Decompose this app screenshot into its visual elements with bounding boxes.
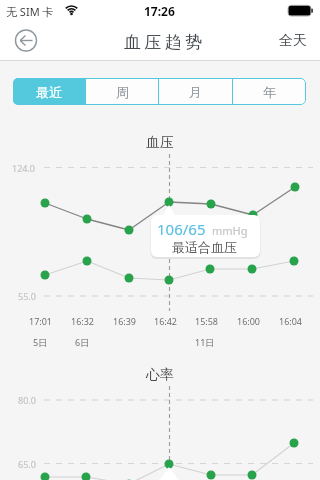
staticText: 血压 [146,134,174,152]
staticText: 16:42 [154,315,178,327]
staticText: 124.0 [12,162,36,174]
staticText: 周 [116,84,129,100]
staticText: 17:01 [29,315,53,327]
staticText: 最近 [36,84,62,100]
staticText: 16:04 [279,315,303,327]
button[interactable] [6,25,46,57]
staticText: 106/65 [157,219,206,239]
staticText: 全天 [279,32,307,50]
button[interactable]: 年 [233,78,306,105]
button[interactable]: 全天 [279,26,307,56]
staticText: 11日 [195,336,215,348]
staticText: 6日 [75,336,90,348]
staticText: 65.0 [18,458,36,470]
button[interactable]: 周 [86,78,158,105]
staticText: 血压趋势 [122,32,204,53]
staticText: mmHg [212,223,248,238]
staticText: 年 [263,84,276,100]
staticText: 月 [189,84,202,100]
staticText: 16:00 [237,315,261,327]
staticText: 无 SIM 卡 [6,4,54,19]
staticText: 55.0 [18,290,36,302]
button[interactable]: 月 [159,78,232,105]
staticText: 最适合血压 [172,239,237,255]
staticText: 心率 [146,366,174,384]
staticText: 16:39 [113,315,137,327]
staticText: 15:58 [195,315,219,327]
staticText: 80.0 [18,394,36,406]
staticText: 16:32 [71,315,95,327]
staticText: 5日 [33,336,48,348]
button[interactable]: 最近 [13,78,85,105]
staticText: 17:26 [144,3,175,19]
